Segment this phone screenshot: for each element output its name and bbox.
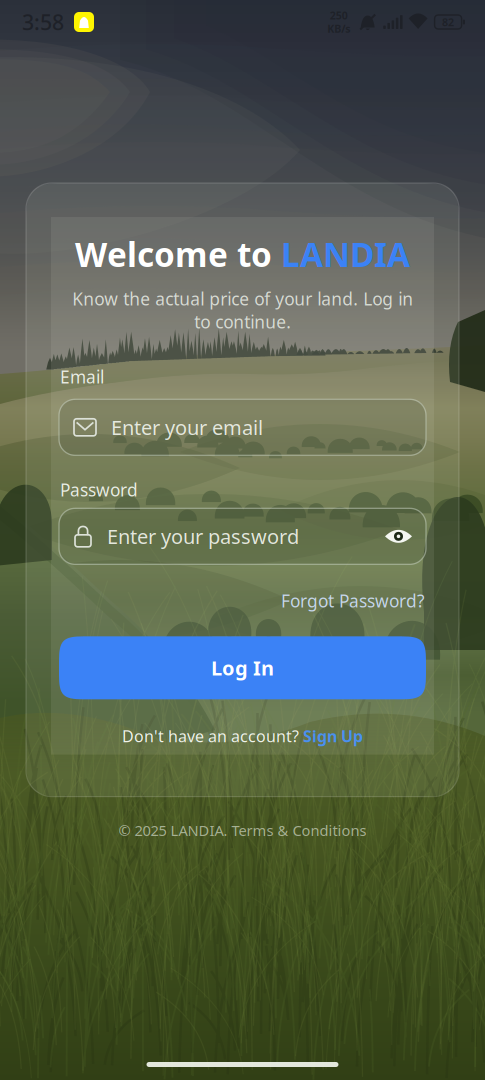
staticText: 3:58 [22, 8, 64, 36]
staticText: Email [60, 365, 104, 388]
staticText: 250 [330, 8, 348, 22]
staticText: © 2025 LANDIA. Terms & Conditions [118, 821, 366, 840]
staticText: Don't have an account? [122, 725, 303, 747]
staticText: 82 [442, 15, 454, 29]
staticText: Sign Up [303, 725, 363, 747]
staticText: Enter your email [111, 414, 263, 441]
button[interactable]: Log In [59, 636, 426, 699]
staticText: Log In [211, 655, 274, 681]
staticText: KB/s [327, 21, 350, 36]
button[interactable]: Sign Up [303, 725, 363, 747]
staticText: Enter your password [107, 523, 299, 550]
staticText: Know the actual price of your land. Log … [72, 287, 413, 333]
button[interactable]: Forgot Password? [281, 564, 426, 612]
button[interactable]: Enter your password [59, 508, 426, 564]
staticText: Forgot Password? [281, 589, 425, 612]
staticText: LANDIA [281, 232, 410, 276]
button[interactable]: Enter your email [59, 399, 426, 455]
staticText: Welcome to [75, 232, 281, 276]
staticText: Password [60, 478, 138, 501]
